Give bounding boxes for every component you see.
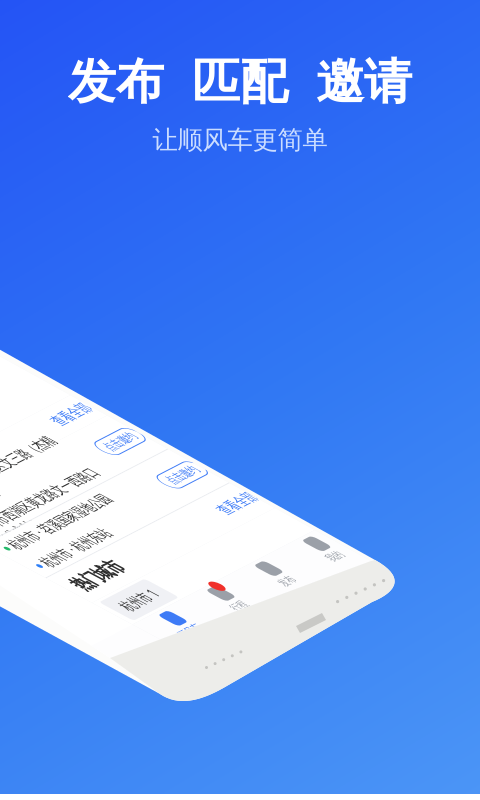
button[interactable]: 杭州市 · 苕溪国家湿地公园 bbox=[0, 602, 375, 662]
staticText: 出发城市 bbox=[26, 462, 94, 483]
staticText: 杭州市 · 苕溪国家湿地公园 bbox=[24, 606, 212, 627]
button[interactable]: 查看全部 bbox=[297, 514, 361, 534]
staticText: 查看全部 bbox=[297, 514, 361, 534]
staticText: 点击邀约 bbox=[301, 564, 353, 580]
staticText: 附近顺路 bbox=[14, 511, 98, 537]
staticText: 杭州市 · 杭州东站 bbox=[24, 637, 148, 658]
staticText: 点击邀约 bbox=[301, 624, 353, 640]
staticText: 让顺风车更简单 bbox=[152, 124, 327, 155]
staticText: 浙江省杭州市西湖区文三路（杰精健身俱乐部） bbox=[24, 528, 264, 567]
staticText: 发布 匹配 邀请 bbox=[68, 52, 412, 111]
staticText: 到达城市 bbox=[127, 462, 195, 483]
button[interactable]: 浙江省杭州市西湖区文三路（杰精健身俱乐部） bbox=[0, 542, 375, 602]
staticText: 杭州市西湖区黄龙路文一西路口（公交站） bbox=[24, 577, 248, 616]
